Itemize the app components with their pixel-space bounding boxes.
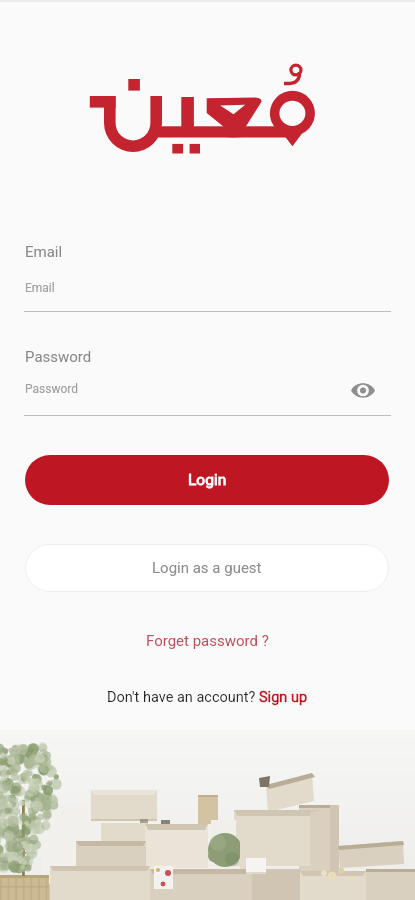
button[interactable]: Forget password ? bbox=[146, 632, 269, 650]
button[interactable]: Sign up bbox=[259, 689, 308, 706]
staticText: Login as a guest bbox=[152, 559, 262, 577]
staticText: Email bbox=[25, 243, 63, 261]
staticText: Password bbox=[25, 348, 92, 366]
button[interactable]: Show password bbox=[350, 377, 376, 403]
staticText: Sign up bbox=[259, 689, 308, 706]
staticText: Email bbox=[25, 281, 55, 295]
button[interactable]: Login bbox=[25, 455, 389, 505]
staticText: Password bbox=[25, 382, 79, 396]
button[interactable]: Login as a guest bbox=[25, 544, 389, 592]
staticText: Login bbox=[188, 471, 227, 489]
staticText: Don't have an account? bbox=[107, 689, 259, 706]
staticText: Forget password ? bbox=[146, 632, 269, 650]
